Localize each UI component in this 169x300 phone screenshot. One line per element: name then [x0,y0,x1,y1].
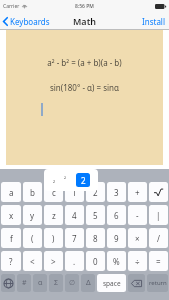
staticText: y [30,210,35,221]
button[interactable]: 4 [65,205,84,225]
staticText: ( [31,233,34,244]
button[interactable]: . [65,251,84,271]
staticText: return [149,279,167,287]
button[interactable]: c [44,182,63,202]
button[interactable]: 0 [86,251,105,271]
button[interactable]: ÷ [128,251,147,271]
button[interactable]: 2 [86,182,105,202]
staticText: ² [64,176,67,184]
staticText: f [10,233,13,244]
staticText: ∆ [86,279,91,287]
staticText: α [38,278,43,288]
staticText: 2 [81,175,86,186]
button[interactable]: % [107,251,126,271]
button[interactable]: f [1,228,21,248]
staticText: 6 [114,210,119,221]
staticText: ? [9,256,13,267]
button[interactable]: return [147,274,168,292]
button[interactable]: 7 [65,228,84,248]
button[interactable]: 2 [76,173,90,187]
button[interactable]: > [44,251,63,271]
staticText: Install [142,16,165,27]
button[interactable]: | [149,205,168,225]
button[interactable]: x [1,205,21,225]
staticText: sin(180° - α) = sinα [6,82,163,93]
staticText: = [156,256,161,267]
button[interactable]: Switch keyboard [1,274,15,292]
button[interactable]: ∆ [81,274,95,292]
staticText: space [103,279,121,288]
button[interactable]: / [149,228,168,248]
button[interactable]: # [17,274,31,292]
button[interactable]: 8 [86,228,105,248]
staticText: 1 [72,187,77,198]
button[interactable] [149,182,168,202]
staticText: ₂ [53,176,56,184]
button[interactable]: Keyboards [0,14,54,29]
staticText: 0 [93,256,98,267]
button[interactable]: 3 [107,182,126,202]
staticText: a [9,187,14,198]
button[interactable]: Σ [49,274,63,292]
staticText: 7 [72,233,77,244]
staticText: > [51,256,56,267]
staticText: Math [73,15,97,27]
staticText: - [136,210,139,221]
staticText: 3 [114,187,119,198]
staticText: # [22,278,27,288]
button[interactable]: α [33,274,47,292]
staticText: % [113,256,120,267]
button[interactable]: 5 [86,205,105,225]
staticText: 4 [72,210,77,221]
staticText: ) [52,233,55,244]
button[interactable]: < [23,251,42,271]
staticText: | [156,210,161,221]
staticText: x [9,210,14,221]
staticText: 8 [93,233,98,244]
staticText: z [52,210,56,221]
button[interactable]: 6 [107,205,126,225]
staticText: c [52,187,56,198]
button[interactable]: + [128,182,147,202]
staticText: Keyboards [10,16,50,27]
button[interactable]: ( [23,228,42,248]
staticText: ÷ [135,256,140,267]
button[interactable]: 1 [65,182,84,202]
staticText: / [157,233,160,244]
button[interactable]: ₂ [44,169,98,191]
staticText: × [135,233,140,244]
button[interactable]: ? [1,251,21,271]
button[interactable]: Backspace [128,274,145,292]
staticText: b [30,187,35,198]
staticText: Carrier [3,3,20,10]
staticText: 9 [114,233,119,244]
button[interactable]: = [149,251,168,271]
button[interactable]: 9 [107,228,126,248]
button[interactable]: b [23,182,42,202]
button[interactable]: a [1,182,21,202]
button[interactable]: z [44,205,63,225]
staticText: < [30,256,35,267]
staticText: a² - b² = (a + b)(a - b) [6,57,163,68]
button[interactable]: Install [138,13,169,30]
button[interactable]: space [97,274,126,292]
staticText: Σ [54,278,59,288]
button[interactable]: × [128,228,147,248]
button[interactable]: ) [44,228,63,248]
button[interactable]: - [128,205,147,225]
staticText: ∅ [69,279,76,287]
staticText: 2 [93,187,98,198]
staticText: 5 [93,210,98,221]
button[interactable]: ∅ [65,274,79,292]
staticText: + [135,187,140,198]
staticText: 8:56 PM [75,3,94,10]
button[interactable]: y [23,205,42,225]
staticText: . [73,256,76,267]
